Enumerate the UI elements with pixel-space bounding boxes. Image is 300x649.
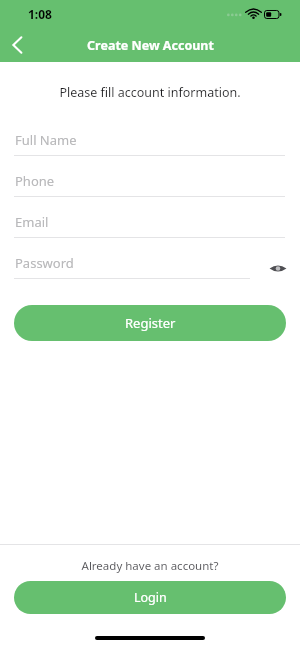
staticText: 1:08 bbox=[28, 6, 52, 22]
button[interactable]: Show password bbox=[264, 254, 292, 282]
button[interactable]: Back bbox=[0, 28, 34, 62]
button[interactable]: Login bbox=[14, 581, 286, 614]
staticText: Create New Account bbox=[87, 37, 214, 54]
staticText: Register bbox=[125, 314, 176, 332]
button[interactable]: Password bbox=[0, 254, 300, 279]
staticText: Email bbox=[15, 213, 49, 231]
button[interactable]: Phone bbox=[0, 172, 300, 197]
staticText: Full Name bbox=[15, 131, 77, 149]
staticText: Password bbox=[15, 254, 74, 272]
staticText: Phone bbox=[15, 172, 55, 190]
staticText: Login bbox=[134, 589, 167, 606]
staticText: Please fill account information. bbox=[0, 84, 300, 101]
button[interactable]: Email bbox=[0, 213, 300, 238]
button[interactable]: Full Name bbox=[0, 131, 300, 156]
staticText: Already have an account? bbox=[0, 558, 300, 574]
button[interactable]: Register bbox=[14, 305, 286, 341]
